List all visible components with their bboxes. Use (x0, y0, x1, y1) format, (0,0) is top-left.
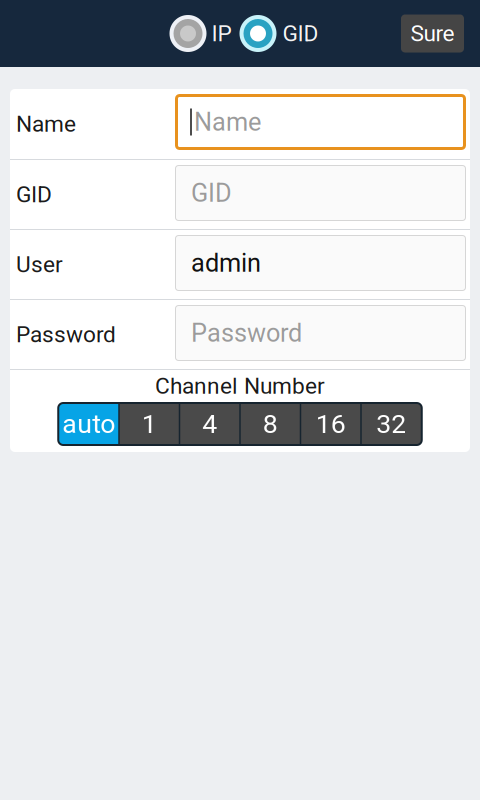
staticText: GID (16, 181, 52, 208)
staticText: IP (211, 20, 231, 47)
staticText: 4 (202, 408, 217, 440)
button[interactable]: 1 (120, 404, 179, 444)
staticText: 32 (376, 408, 406, 440)
staticText: Name (194, 107, 261, 137)
staticText: GID (191, 178, 232, 208)
staticText: Password (16, 321, 116, 348)
staticText: 16 (316, 408, 346, 440)
button[interactable]: IP (169, 15, 231, 52)
staticText: auto (62, 408, 115, 440)
button[interactable]: Sure (401, 14, 464, 52)
button[interactable]: 16 (301, 404, 360, 444)
button[interactable]: 8 (241, 404, 300, 444)
staticText: Channel Number (155, 373, 325, 399)
staticText: admin (191, 248, 261, 278)
button[interactable]: auto (59, 404, 118, 444)
staticText: GID (282, 20, 318, 47)
button[interactable]: GID (239, 15, 318, 52)
staticText: Name (16, 111, 76, 137)
staticText: 8 (263, 408, 278, 440)
staticText: User (16, 251, 63, 278)
staticText: Sure (410, 20, 454, 47)
button[interactable]: 32 (362, 404, 421, 444)
button[interactable]: 4 (180, 404, 239, 444)
staticText: Password (191, 318, 302, 348)
staticText: 1 (142, 408, 157, 440)
